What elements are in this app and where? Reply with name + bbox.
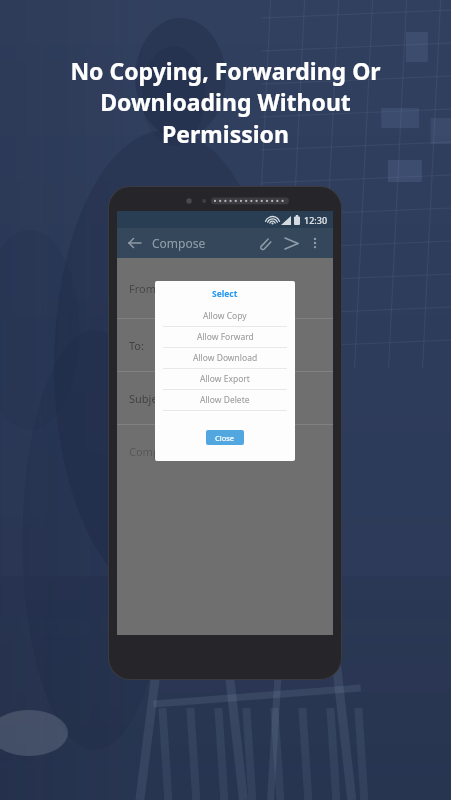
staticText: To: bbox=[129, 338, 144, 353]
button[interactable]: Allow Delete bbox=[155, 390, 295, 410]
staticText: Subject: bbox=[129, 391, 170, 406]
button[interactable]: Subject: bbox=[117, 372, 333, 424]
staticText: Close bbox=[215, 433, 235, 443]
button[interactable]: More options bbox=[306, 234, 324, 252]
staticText: Allow Copy bbox=[203, 310, 247, 322]
button[interactable]: Send bbox=[281, 233, 301, 253]
button[interactable]: Allow Copy bbox=[155, 306, 295, 326]
button[interactable]: To: bbox=[117, 319, 333, 371]
button[interactable]: Compose email bbox=[117, 425, 333, 477]
button[interactable]: Attach bbox=[254, 233, 274, 253]
staticText: Allow Download bbox=[193, 352, 258, 364]
staticText: Allow Export bbox=[200, 373, 250, 385]
staticText: Select bbox=[212, 288, 238, 300]
staticText: 12:30 bbox=[304, 214, 328, 226]
button[interactable]: Allow Forward bbox=[155, 327, 295, 347]
staticText: From: justinthomas@gmail.com bbox=[129, 281, 294, 296]
staticText: Allow Forward bbox=[197, 331, 254, 343]
button[interactable]: From: justinthomas@gmail.com bbox=[117, 258, 333, 318]
staticText: No Copying, Forwarding Or Downloading Wi… bbox=[70, 55, 381, 150]
button[interactable]: Back bbox=[126, 234, 144, 252]
staticText: Compose bbox=[152, 235, 206, 251]
button[interactable]: Allow Export bbox=[155, 369, 295, 389]
button[interactable]: Allow Download bbox=[155, 348, 295, 368]
staticText: Compose email bbox=[129, 444, 209, 459]
staticText: Allow Delete bbox=[200, 394, 250, 406]
button[interactable]: Close bbox=[206, 430, 244, 445]
